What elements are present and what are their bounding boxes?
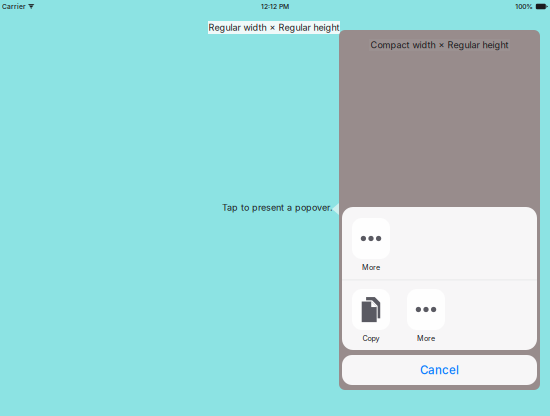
button[interactable]: Cancel [342,355,537,385]
staticText: Compact width × Regular height [370,39,508,50]
staticText: More [417,334,435,343]
staticText: More [362,263,380,272]
staticText: Carrier [2,2,26,11]
staticText: Cancel [420,363,459,377]
button[interactable]: More [343,218,398,272]
button[interactable]: More [398,289,453,343]
staticText: Copy [362,334,379,343]
staticText: 12:12 PM [261,2,289,11]
staticText: Tap to present a popover. [222,202,333,213]
staticText: Regular width × Regular height [208,22,339,33]
staticText: 100% [515,2,533,11]
button[interactable]: Copy [343,289,398,343]
